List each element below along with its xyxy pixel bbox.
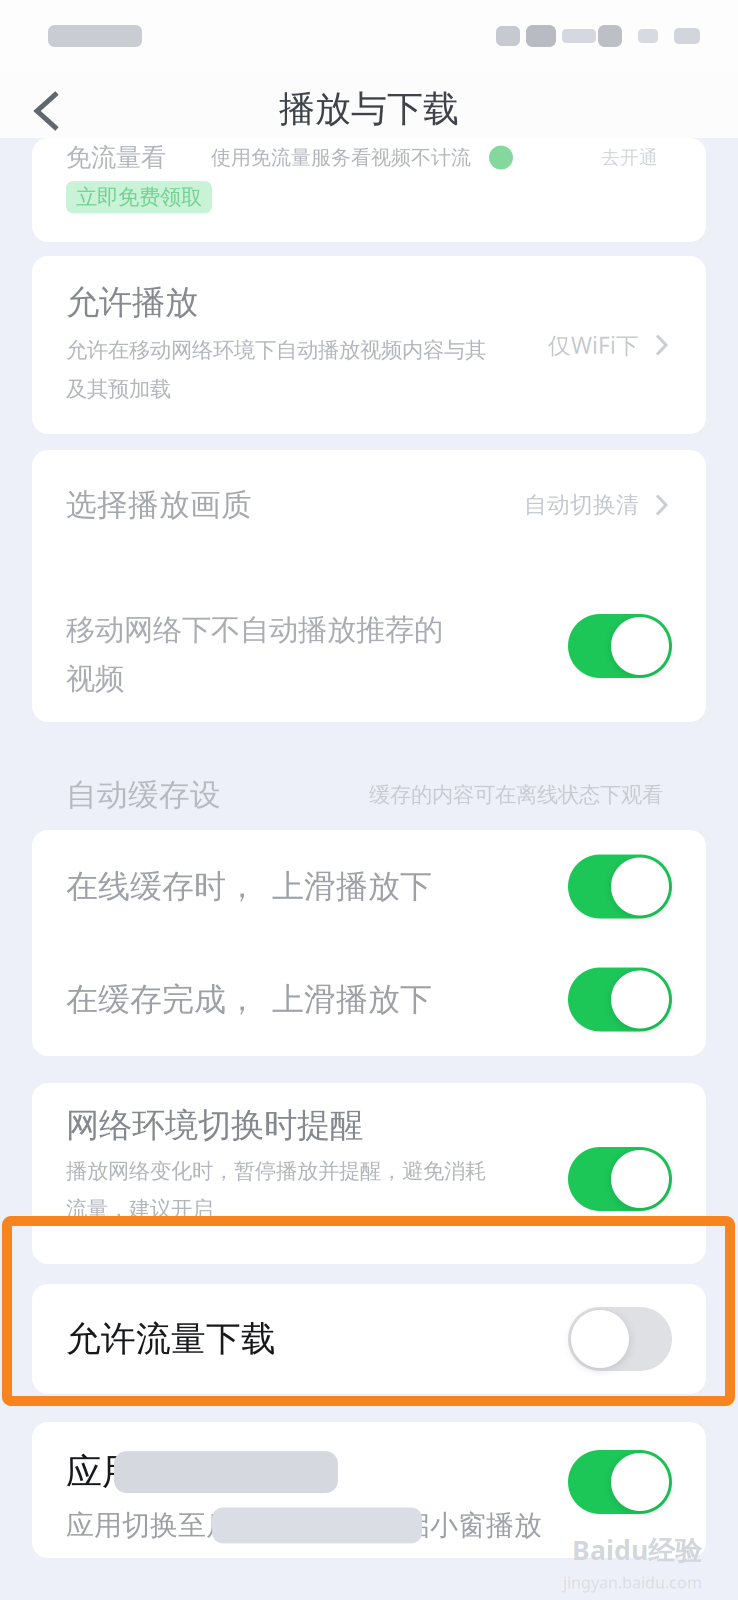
staticText: 上滑播放下 (272, 867, 432, 906)
button[interactable]: 返回 (0, 74, 84, 136)
staticText: 仅WiFi下 (548, 330, 639, 360)
staticText: 视频 (66, 661, 124, 697)
staticText: 播放网络变化时，暂停播放并提醒，避免消耗 (66, 1158, 486, 1184)
staticText: 允许播放 (66, 282, 198, 323)
staticText: 在缓存完成， (66, 980, 258, 1019)
staticText: 选择播放画质 (66, 486, 252, 524)
staticText: 网络环境切换时提醒 (66, 1105, 363, 1146)
button[interactable]: 允许流量下载 (32, 1284, 706, 1394)
staticText: 移动网络下不自动播放推荐的 (66, 612, 443, 648)
staticText: 在线缓存时， (66, 867, 258, 906)
staticText: Baidu经验 (572, 1532, 702, 1568)
staticText: 应用切换至后台时，自动开启小窗播放 (66, 1508, 542, 1543)
staticText: 及其预加载 (66, 376, 171, 402)
button[interactable]: 在线缓存时， (32, 830, 706, 943)
staticText: 播放与下载 (279, 87, 459, 131)
staticText: 自动缓存设 (66, 776, 221, 814)
button[interactable]: 在缓存完成， (32, 943, 706, 1056)
staticText: 允许在移动网络环境下自动播放视频内容与其 (66, 337, 486, 363)
staticText: 应用外小窗播放 (66, 1450, 318, 1494)
staticText: 上滑播放下 (272, 980, 432, 1019)
staticText: 免流量看 (66, 142, 166, 173)
staticText: jingyan.baidu.com (563, 1572, 702, 1593)
staticText: 缓存的内容可在离线状态下观看 (369, 782, 663, 808)
staticText: 流量，建议开启 (66, 1196, 213, 1222)
staticText: 使用免流量服务看视频不计流 (211, 145, 471, 170)
staticText: 自动切换清 (524, 491, 639, 519)
staticText: 允许流量下载 (66, 1318, 276, 1360)
staticText: 立即免费领取 (76, 184, 202, 210)
staticText: 去开通 (601, 146, 658, 169)
